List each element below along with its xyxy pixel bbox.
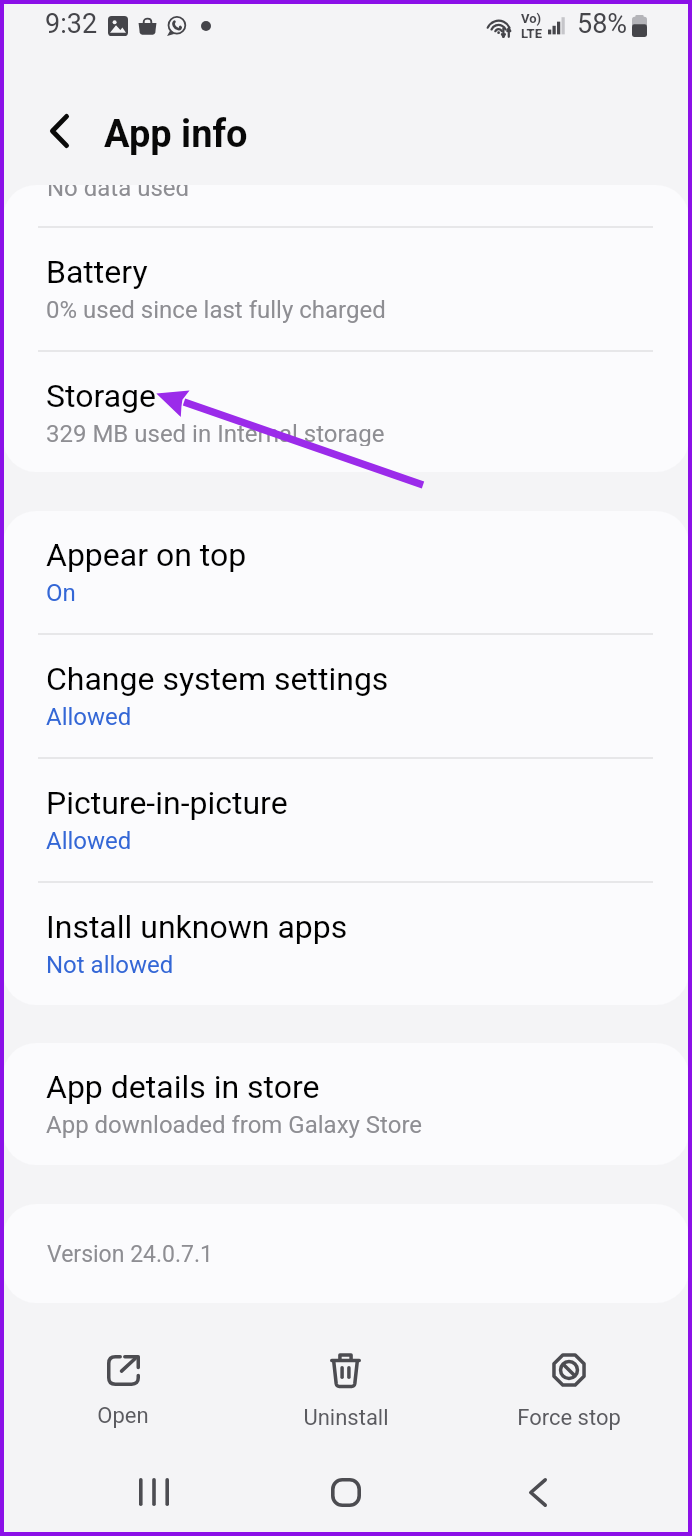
button[interactable]: Battery: [3, 228, 689, 350]
button[interactable]: Picture-in-picture: [3, 759, 689, 881]
staticText: Battery: [46, 253, 148, 291]
staticText: Vo): [521, 11, 542, 26]
button[interactable]: Storage: [3, 352, 689, 472]
button[interactable]: App details in store: [3, 1043, 689, 1165]
staticText: 9:32: [45, 8, 98, 40]
button[interactable]: Force stop: [457, 1335, 680, 1448]
staticText: Allowed: [46, 827, 132, 855]
staticText: App details in store: [46, 1068, 320, 1106]
staticText: 329 MB used in Internal storage: [46, 420, 385, 446]
button[interactable]: Uninstall: [234, 1335, 457, 1448]
staticText: Change system settings: [46, 660, 389, 698]
button[interactable]: Home: [250, 1448, 442, 1536]
staticText: On: [46, 579, 76, 607]
staticText: 0% used since last fully charged: [46, 296, 386, 324]
staticText: LTE: [521, 26, 542, 41]
button[interactable]: Open: [12, 1335, 234, 1448]
staticText: Version 24.0.7.1: [47, 1241, 213, 1268]
staticText: Force stop: [517, 1405, 621, 1431]
button[interactable]: Install unknown apps: [3, 883, 689, 1005]
staticText: Uninstall: [303, 1405, 389, 1431]
staticText: Picture-in-picture: [46, 784, 288, 822]
staticText: Not allowed: [46, 951, 174, 979]
button[interactable]: Back: [442, 1448, 634, 1536]
staticText: Install unknown apps: [46, 908, 348, 946]
staticText: Storage: [46, 377, 156, 415]
staticText: Appear on top: [46, 536, 247, 574]
button[interactable]: Version 24.0.7.1: [3, 1204, 689, 1303]
button[interactable]: Recent apps: [58, 1448, 250, 1536]
button[interactable]: Navigate up: [25, 97, 93, 165]
staticText: Open: [97, 1403, 149, 1429]
button[interactable]: Change system settings: [3, 635, 689, 757]
staticText: Allowed: [46, 703, 132, 731]
staticText: App downloaded from Galaxy Store: [46, 1111, 423, 1139]
staticText: 58%: [577, 8, 628, 40]
button[interactable]: Appear on top: [3, 511, 689, 633]
staticText: App info: [104, 112, 248, 157]
staticText: No data used: [47, 185, 190, 202]
